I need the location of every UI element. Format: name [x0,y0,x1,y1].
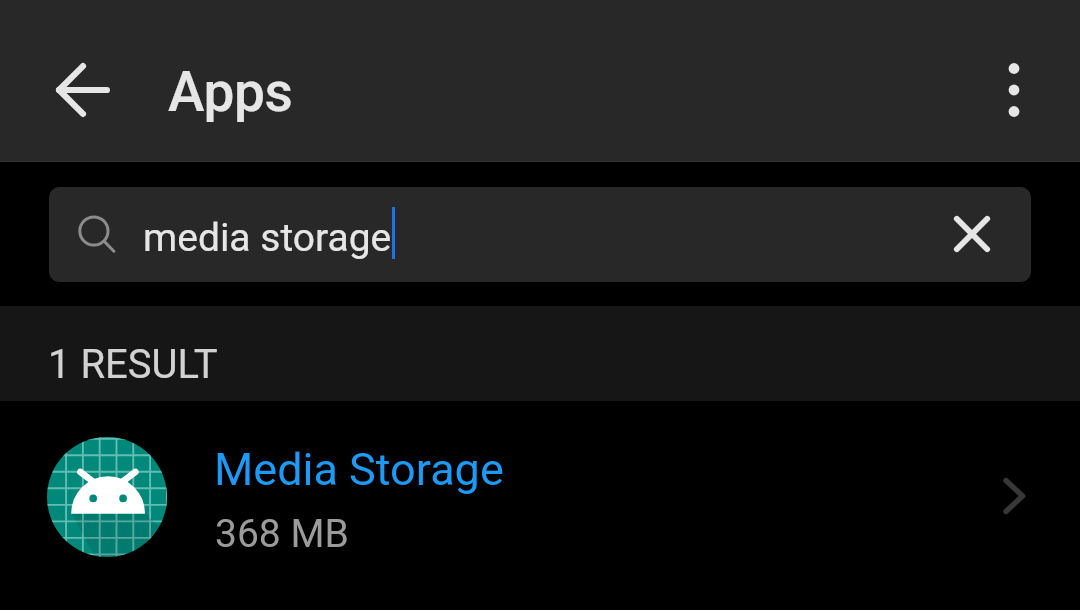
staticText: 368 MB [215,511,349,557]
button[interactable]: App details [974,456,1054,536]
button[interactable]: Back [37,44,129,136]
button[interactable]: Search apps [49,187,1031,282]
staticText: Media Storage [214,443,504,496]
staticText: media storage [143,215,392,261]
button[interactable]: More options [968,44,1060,136]
staticText: 1 RESULT [48,341,218,388]
button[interactable]: Clear search [926,188,1018,280]
button[interactable]: Media Storage [0,401,1080,593]
staticText: Apps [168,60,293,124]
